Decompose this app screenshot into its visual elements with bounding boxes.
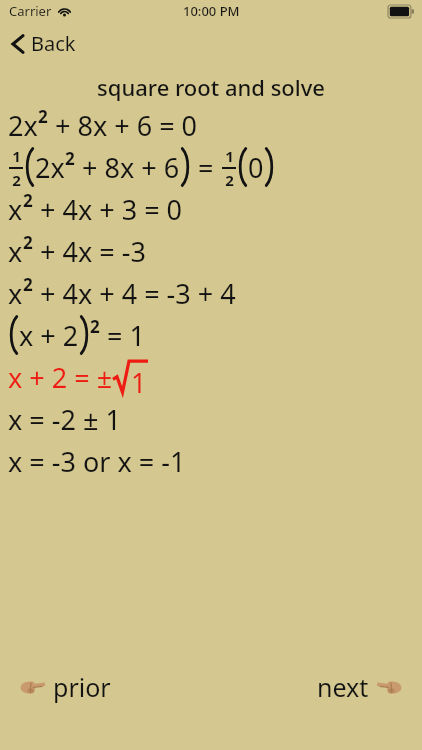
staticText: 2 <box>65 147 75 170</box>
staticText: 10:00 PM <box>183 2 240 20</box>
staticText: Back <box>31 30 76 57</box>
staticText: 2x <box>35 149 65 186</box>
staticText: x + 2 = ± <box>8 359 113 396</box>
button[interactable]: next <box>313 666 410 708</box>
staticText: 2 <box>38 105 48 128</box>
staticText: 2x <box>8 107 38 144</box>
staticText: = 1 <box>100 317 145 354</box>
staticText: square root and solve <box>0 72 422 102</box>
staticText: 2 <box>23 189 33 212</box>
staticText: x = -3 or x = -1 <box>8 443 186 480</box>
staticText: + 8x + 6 <box>75 149 180 186</box>
staticText: + 8x + 6 = 0 <box>48 107 198 144</box>
staticText: prior <box>53 670 111 704</box>
staticText: = <box>191 149 221 186</box>
staticText: x <box>8 233 23 270</box>
staticText: next <box>317 670 369 704</box>
button[interactable]: Back <box>11 28 84 59</box>
staticText: + 4x + 3 = 0 <box>33 191 183 228</box>
staticText: 2 <box>90 315 100 338</box>
staticText: + 4x + 4 = -3 + 4 <box>33 275 236 312</box>
staticText: x + 2 <box>19 317 79 354</box>
button[interactable]: prior <box>12 666 115 708</box>
staticText: x = -2 ± 1 <box>8 401 121 438</box>
staticText: 1 <box>12 146 21 166</box>
staticText: 2 <box>12 170 21 188</box>
staticText: 1 <box>131 364 147 400</box>
staticText: 2 <box>225 170 234 188</box>
staticText: 1 <box>225 146 234 166</box>
staticText: x <box>8 191 23 228</box>
staticText: + 4x = -3 <box>33 233 146 270</box>
staticText: x <box>8 275 23 312</box>
staticText: 0 <box>248 149 264 186</box>
staticText: 2 <box>23 231 33 254</box>
staticText: Carrier <box>9 2 52 20</box>
staticText: 2 <box>23 273 33 296</box>
